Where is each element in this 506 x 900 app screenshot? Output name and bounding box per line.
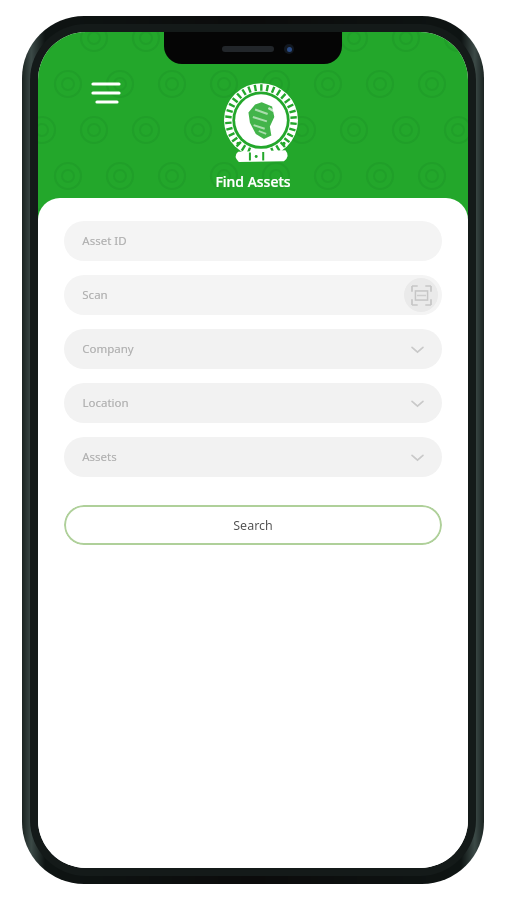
staticText: Search — [233, 517, 273, 534]
button[interactable]: Asset ID — [64, 221, 442, 261]
staticText: Company — [82, 341, 134, 357]
staticText: Location — [82, 395, 129, 411]
button[interactable]: Location — [64, 383, 442, 423]
staticText: Scan — [82, 287, 108, 303]
button[interactable]: Scan barcode — [404, 278, 438, 312]
staticText: Assets — [82, 449, 117, 465]
button[interactable]: Scan — [64, 275, 442, 315]
staticText: Asset ID — [82, 233, 127, 249]
button[interactable]: Company — [64, 329, 442, 369]
staticText: Find Assets — [215, 172, 291, 191]
button[interactable]: Search — [64, 505, 442, 545]
button[interactable]: Open navigation menu — [86, 70, 126, 110]
button[interactable]: Assets — [64, 437, 442, 477]
